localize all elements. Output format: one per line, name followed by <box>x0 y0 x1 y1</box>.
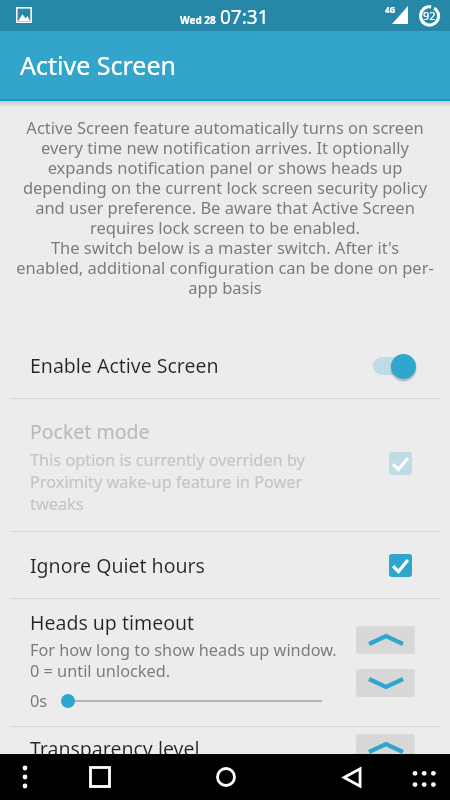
button[interactable]: Heads up timeout <box>0 599 450 726</box>
button[interactable]: Transparency level <box>0 727 450 800</box>
button[interactable]: Toggle option <box>383 548 417 582</box>
button[interactable]: Recent apps <box>75 754 125 800</box>
staticText: Pocket mode <box>30 418 150 445</box>
button[interactable]: Home <box>200 754 251 800</box>
button[interactable]: Increase value <box>356 626 415 654</box>
button[interactable]: Back <box>327 754 377 800</box>
button[interactable]: Toggle option <box>383 446 417 480</box>
staticText: 0s <box>30 690 48 712</box>
button[interactable]: All apps <box>400 754 450 800</box>
button[interactable]: Increase value <box>356 734 415 762</box>
staticText: This option is currently overriden by Pr… <box>30 449 305 515</box>
button[interactable]: Decrease value <box>356 669 415 697</box>
staticText: Wed 28 <box>180 13 216 27</box>
staticText: Active Screen feature automatically turn… <box>0 116 450 299</box>
button[interactable]: Heads up timeout slider <box>61 691 322 711</box>
button[interactable]: Ignore Quiet hours <box>0 532 450 598</box>
staticText: Active Screen <box>20 48 176 82</box>
button[interactable]: Enable Active Screen <box>0 333 450 398</box>
button[interactable]: Pocket mode <box>0 399 450 531</box>
button[interactable]: Enable Active Screen <box>373 349 419 383</box>
staticText: Transparency level <box>30 735 356 762</box>
staticText: 92 <box>423 8 436 23</box>
staticText: Ignore Quiet hours <box>30 552 383 579</box>
staticText: For how long to show heads up window. 0 … <box>30 639 337 682</box>
staticText: Heads up timeout <box>30 609 195 636</box>
staticText: 4G <box>385 4 396 15</box>
staticText: 07:31 <box>220 4 269 30</box>
button[interactable]: Menu <box>0 754 49 800</box>
staticText: Enable Active Screen <box>30 352 373 379</box>
